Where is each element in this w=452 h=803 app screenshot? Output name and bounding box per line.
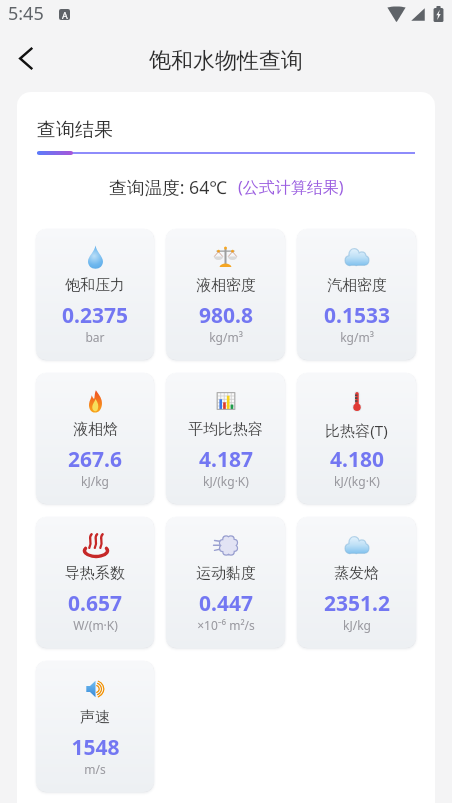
button[interactable]: 平均比热容 xyxy=(166,373,285,504)
button[interactable]: 饱和压力 xyxy=(36,229,154,360)
staticText: 4.187 xyxy=(199,445,253,474)
staticText: 导热系数 xyxy=(65,564,125,583)
staticText: 4.180 xyxy=(330,445,384,474)
staticText: 饱和压力 xyxy=(65,276,125,295)
staticText: 0.1533 xyxy=(324,301,390,330)
button[interactable]: 导热系数 xyxy=(36,517,154,648)
staticText: 0.447 xyxy=(199,589,253,618)
staticText: bar xyxy=(85,329,105,345)
button[interactable]: 运动黏度 xyxy=(166,517,285,648)
button[interactable]: 蒸发焓 xyxy=(297,517,416,648)
button[interactable]: 查询结果 xyxy=(37,118,113,142)
staticText: 平均比热容 xyxy=(188,420,263,439)
staticText: 980.8 xyxy=(199,301,253,330)
staticText: 比热容(T) xyxy=(325,420,388,440)
staticText: 1548 xyxy=(71,733,120,762)
staticText: 运动黏度 xyxy=(196,564,256,583)
staticText: 查询结果 xyxy=(37,118,113,142)
button[interactable]: 声速 xyxy=(36,661,154,792)
staticText: 267.6 xyxy=(68,445,122,474)
staticText: 饱和水物性查询 xyxy=(149,47,303,75)
staticText: (公式计算结果) xyxy=(238,176,344,198)
button[interactable]: 返回 xyxy=(4,36,48,80)
staticText: kJ/(kg·K) xyxy=(334,473,380,489)
button[interactable]: 比热容(T) xyxy=(297,373,416,504)
staticText: A xyxy=(62,9,68,20)
button[interactable]: 液相密度 xyxy=(166,229,285,360)
staticText: 汽相密度 xyxy=(327,276,387,295)
staticText: 声速 xyxy=(80,708,110,727)
button[interactable]: 液相焓 xyxy=(36,373,154,504)
staticText: 液相密度 xyxy=(196,276,256,295)
staticText: kg/m³ xyxy=(340,329,374,345)
staticText: m/s xyxy=(84,761,106,777)
staticText: 液相焓 xyxy=(73,420,118,439)
staticText: W/(m·K) xyxy=(73,617,118,633)
staticText: kJ/kg xyxy=(81,473,109,489)
staticText: 蒸发焓 xyxy=(334,564,379,583)
staticText: kJ/(kg·K) xyxy=(203,473,249,489)
staticText: ×10⁻⁶ m²/s xyxy=(197,617,255,633)
staticText: 查询温度: 64℃ xyxy=(109,175,227,199)
button[interactable]: 汽相密度 xyxy=(297,229,416,360)
staticText: kg/m³ xyxy=(209,329,243,345)
staticText: 0.657 xyxy=(68,589,122,618)
staticText: 5:45 xyxy=(8,1,44,26)
staticText: 2351.2 xyxy=(324,589,390,618)
staticText: kJ/kg xyxy=(343,617,371,633)
staticText: 0.2375 xyxy=(62,301,128,330)
